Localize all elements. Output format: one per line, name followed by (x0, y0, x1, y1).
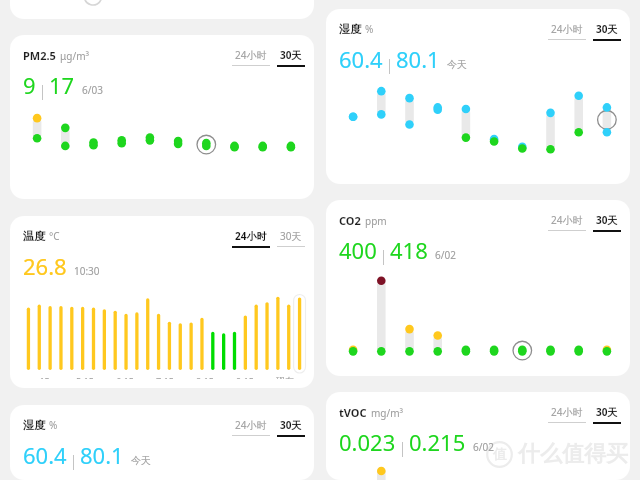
button[interactable]: 30天 (593, 22, 621, 41)
staticText: 0.215 (409, 427, 466, 457)
button[interactable]: 24小时 (232, 48, 270, 66)
staticText: 10:30 (74, 264, 100, 278)
staticText: ppm (365, 214, 387, 228)
staticText: 24小时 (235, 48, 267, 62)
staticText: μg/m³ (60, 49, 89, 63)
button[interactable]: tVOC (326, 392, 630, 480)
button[interactable]: 24小时 (232, 418, 270, 436)
staticText: 30天 (280, 229, 302, 243)
staticText: 24小时 (551, 213, 583, 227)
button[interactable]: 30天 (277, 48, 305, 67)
staticText: 80.1 (396, 44, 440, 74)
staticText: :15 (37, 375, 50, 379)
button[interactable]: PM2.5 (10, 35, 314, 199)
staticText: 80.1 (80, 440, 124, 470)
staticText: 6/03 (82, 83, 103, 97)
staticText: 现在 (276, 375, 294, 379)
staticText: 湿度 (23, 418, 45, 432)
staticText: PM2.5 (23, 48, 56, 63)
button[interactable]: 30天 (593, 213, 621, 232)
button[interactable]: 24小时 (232, 229, 270, 248)
staticText: 9:15 (236, 375, 254, 379)
staticText: tVOC (339, 405, 367, 420)
staticText: 什么值得买 (518, 440, 628, 468)
button[interactable]: 24小时 (548, 22, 586, 40)
staticText: 30天 (280, 418, 302, 432)
button[interactable]: CO2 (326, 200, 630, 376)
staticText: 30天 (596, 213, 618, 227)
staticText: 8:15 (196, 375, 214, 379)
staticText: 60.4 (23, 440, 67, 470)
staticText: °C (49, 229, 60, 243)
staticText: 湿度 (339, 22, 361, 36)
staticText: 26.8 (23, 251, 67, 281)
button[interactable]: 30天 (593, 405, 621, 424)
staticText: 30天 (596, 22, 618, 36)
staticText: % (365, 22, 374, 36)
staticText: 24小时 (551, 405, 583, 419)
staticText: 60.4 (339, 44, 383, 74)
staticText: 6/02 (435, 248, 456, 262)
staticText: 7:15 (156, 375, 174, 379)
staticText: 30天 (280, 48, 302, 62)
button[interactable]: 湿度 (10, 405, 314, 480)
staticText: 24小时 (235, 229, 267, 243)
staticText: mg/m³ (371, 406, 404, 420)
staticText: 0.023 (339, 427, 396, 457)
staticText: 值 (493, 446, 507, 464)
staticText: 418 (390, 235, 428, 265)
button[interactable] (10, 0, 314, 19)
staticText: 5:15 (76, 375, 94, 379)
button[interactable]: 30天 (277, 229, 305, 247)
staticText: 6/02 (473, 440, 494, 454)
button[interactable]: 湿度 (326, 9, 630, 184)
staticText: 今天 (447, 58, 467, 71)
staticText: 9 (23, 70, 36, 100)
staticText: 今天 (131, 454, 151, 467)
staticText: 17 (49, 70, 75, 100)
staticText: 30天 (596, 405, 618, 419)
button[interactable]: 温度 (10, 216, 314, 388)
staticText: 6:15 (116, 375, 134, 379)
staticText: 24小时 (551, 22, 583, 36)
staticText: % (49, 418, 58, 432)
button[interactable]: 24小时 (548, 405, 586, 423)
button[interactable]: 30天 (277, 418, 305, 437)
button[interactable]: 24小时 (548, 213, 586, 231)
staticText: CO2 (339, 213, 361, 228)
staticText: 24小时 (235, 418, 267, 432)
staticText: 400 (339, 235, 377, 265)
staticText: 温度 (23, 229, 45, 243)
